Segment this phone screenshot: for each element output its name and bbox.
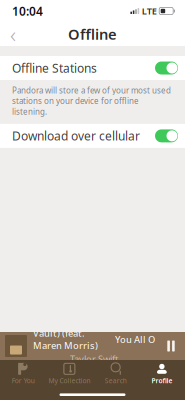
staticText: Offline Stations	[12, 60, 97, 76]
button[interactable]: Back	[0, 22, 26, 46]
button[interactable]: Pause	[160, 332, 182, 360]
button[interactable]: Vault) (feat. Maren Morris)	[0, 332, 185, 360]
button[interactable]: Download over cellular	[0, 124, 185, 148]
staticText: You All O	[115, 333, 155, 345]
staticText: Taylor Swift	[70, 353, 118, 365]
staticText: LTE	[142, 5, 157, 17]
staticText: For You	[12, 376, 35, 385]
staticText: ‹	[10, 19, 16, 49]
button[interactable]: Profile	[139, 360, 185, 388]
button[interactable]: Search	[92, 360, 139, 388]
staticText: Pandora will store a few of your most us…	[12, 85, 171, 117]
staticText: Vault) (feat. Maren Morris)	[33, 327, 98, 352]
staticText: Download over cellular	[12, 128, 140, 144]
staticText: Offline	[68, 24, 117, 44]
button[interactable]: For You	[0, 360, 46, 388]
staticText: My Collection	[48, 376, 90, 385]
staticText: Search	[105, 376, 127, 385]
staticText: Profile	[151, 376, 172, 385]
button[interactable]: My Collection	[46, 360, 92, 388]
staticText: 10:04	[12, 3, 43, 19]
button[interactable]: Offline Stations	[0, 56, 185, 80]
